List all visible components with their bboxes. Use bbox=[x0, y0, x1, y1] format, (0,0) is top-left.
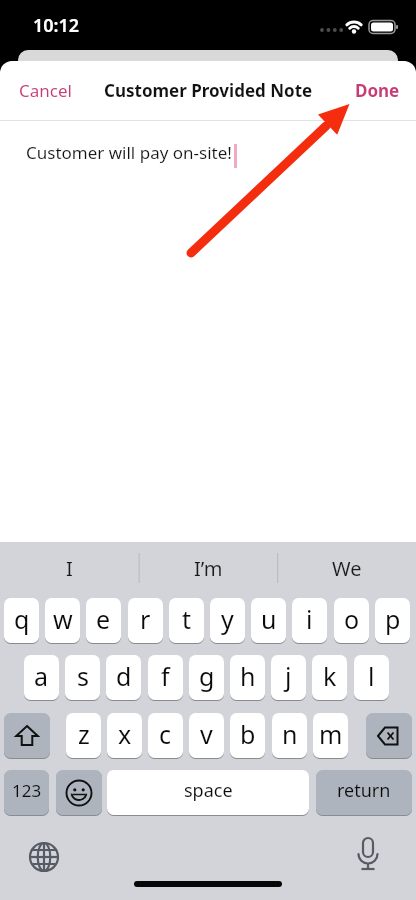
staticText: Customer Provided Note bbox=[104, 79, 313, 102]
staticText: o bbox=[344, 602, 360, 636]
staticText: space bbox=[184, 778, 233, 803]
button[interactable] bbox=[56, 770, 102, 815]
button[interactable] bbox=[4, 713, 50, 758]
button[interactable] bbox=[366, 713, 412, 758]
button[interactable]: l bbox=[354, 655, 389, 700]
staticText: q bbox=[14, 602, 30, 636]
staticText: r bbox=[140, 602, 151, 636]
button[interactable]: c bbox=[148, 713, 183, 758]
staticText: Cancel bbox=[19, 79, 72, 102]
button[interactable]: s bbox=[65, 655, 100, 700]
staticText: 10:12 bbox=[33, 13, 80, 38]
staticText: y bbox=[221, 602, 234, 636]
button[interactable]: o bbox=[334, 598, 369, 643]
button[interactable]: Done bbox=[345, 69, 410, 112]
button[interactable]: I bbox=[0, 542, 139, 594]
button[interactable]: j bbox=[271, 655, 306, 700]
staticText: 123 bbox=[12, 779, 42, 802]
staticText: i bbox=[306, 602, 313, 636]
button[interactable]: 123 bbox=[4, 770, 49, 815]
staticText: n bbox=[282, 717, 298, 751]
staticText: s bbox=[77, 659, 89, 693]
staticText: z bbox=[78, 717, 90, 751]
staticText: Done bbox=[355, 79, 400, 102]
button[interactable]: r bbox=[128, 598, 163, 643]
staticText: I’m bbox=[194, 555, 223, 582]
button[interactable]: u bbox=[251, 598, 286, 643]
staticText: t bbox=[182, 602, 192, 636]
staticText: m bbox=[319, 717, 343, 751]
staticText: Customer will pay on-site! bbox=[26, 141, 232, 164]
staticText: a bbox=[34, 659, 49, 693]
button[interactable]: g bbox=[189, 655, 224, 700]
staticText: return bbox=[337, 778, 391, 803]
staticText: f bbox=[161, 659, 170, 693]
button[interactable]: return bbox=[316, 770, 412, 815]
staticText: p bbox=[385, 602, 401, 636]
button[interactable]: x bbox=[107, 713, 142, 758]
button[interactable]: k bbox=[312, 655, 347, 700]
button[interactable]: w bbox=[45, 598, 80, 643]
button[interactable]: q bbox=[4, 598, 39, 643]
staticText: x bbox=[118, 717, 132, 751]
button[interactable]: We bbox=[277, 542, 416, 594]
staticText: d bbox=[116, 659, 132, 693]
button[interactable]: a bbox=[24, 655, 59, 700]
staticText: I bbox=[66, 555, 73, 582]
button[interactable]: d bbox=[106, 655, 141, 700]
staticText: w bbox=[53, 602, 73, 636]
button[interactable]: Cancel bbox=[9, 69, 82, 112]
button[interactable]: space bbox=[107, 770, 309, 815]
staticText: l bbox=[368, 659, 375, 693]
staticText: u bbox=[261, 602, 277, 636]
button[interactable]: i bbox=[292, 598, 327, 643]
button[interactable]: v bbox=[189, 713, 224, 758]
staticText: k bbox=[323, 659, 337, 693]
button[interactable]: f bbox=[148, 655, 183, 700]
button[interactable]: h bbox=[230, 655, 265, 700]
button[interactable]: e bbox=[86, 598, 121, 643]
button[interactable] bbox=[348, 834, 388, 874]
staticText: c bbox=[159, 717, 172, 751]
staticText: We bbox=[332, 555, 362, 582]
button[interactable]: t bbox=[169, 598, 204, 643]
staticText: b bbox=[240, 717, 256, 751]
button[interactable]: m bbox=[313, 713, 348, 758]
staticText: g bbox=[199, 659, 215, 693]
button[interactable]: I’m bbox=[139, 542, 278, 594]
staticText: e bbox=[96, 602, 111, 636]
button[interactable]: z bbox=[66, 713, 101, 758]
button[interactable]: b bbox=[230, 713, 265, 758]
staticText: v bbox=[200, 717, 213, 751]
staticText: j bbox=[285, 659, 292, 693]
button[interactable]: n bbox=[272, 713, 307, 758]
staticText: h bbox=[240, 659, 256, 693]
button[interactable]: p bbox=[375, 598, 410, 643]
button[interactable] bbox=[24, 837, 64, 877]
button[interactable]: y bbox=[210, 598, 245, 643]
